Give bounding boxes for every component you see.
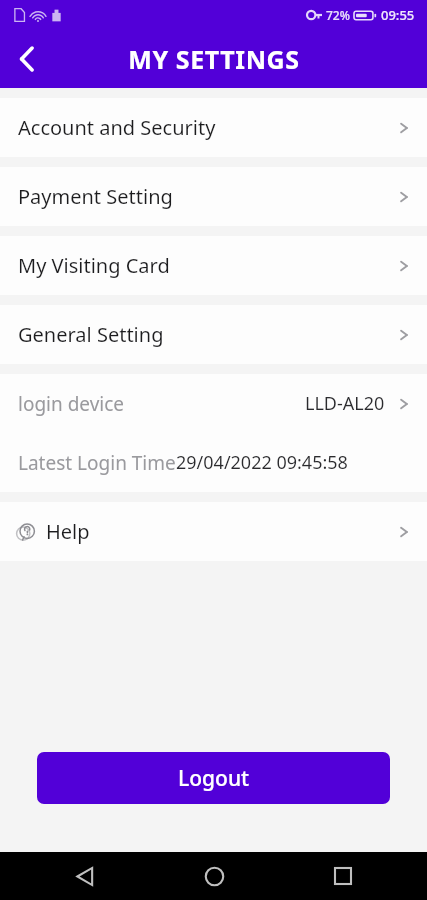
button[interactable]: Account and Security: [0, 98, 427, 157]
staticText: My Visiting Card: [18, 252, 170, 279]
staticText: Logout: [178, 764, 250, 793]
button[interactable]: Home: [190, 852, 238, 900]
staticText: MY SETTINGS: [128, 42, 300, 76]
staticText: LLD-AL20: [305, 391, 385, 416]
button[interactable]: My Visiting Card: [0, 236, 427, 295]
button[interactable]: Help: [0, 502, 427, 561]
button[interactable]: General Setting: [0, 305, 427, 364]
button[interactable]: Back: [60, 852, 108, 900]
staticText: 29/04/2022 09:45:58: [176, 450, 348, 475]
button[interactable]: Logout: [37, 752, 390, 804]
button[interactable]: Payment Setting: [0, 167, 427, 226]
staticText: login device: [18, 391, 125, 417]
staticText: 72%: [326, 7, 350, 23]
button[interactable]: Back: [0, 32, 54, 86]
staticText: Payment Setting: [18, 183, 173, 210]
staticText: Account and Security: [18, 114, 216, 141]
staticText: Help: [46, 518, 90, 545]
staticText: Latest Login Time: [18, 450, 176, 476]
button[interactable]: Recent apps: [319, 852, 367, 900]
staticText: General Setting: [18, 321, 164, 348]
button[interactable]: login device: [0, 374, 427, 433]
staticText: 09:55: [381, 6, 415, 24]
